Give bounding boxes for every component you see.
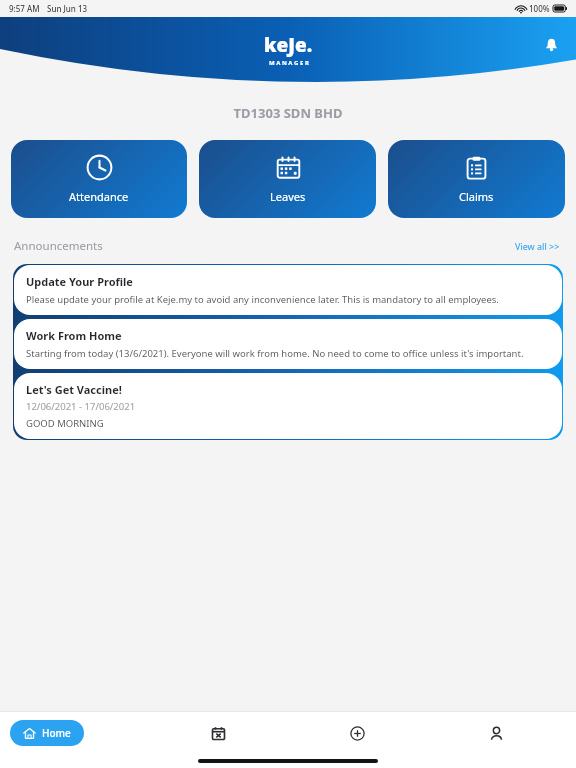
button[interactable]: Notifications xyxy=(538,31,564,57)
staticText: Sun Jun 13 xyxy=(47,3,88,14)
staticText: Attendance xyxy=(69,189,129,204)
staticText: keJe. xyxy=(264,32,313,58)
staticText: M A N A G E R xyxy=(269,59,309,67)
staticText: Claims xyxy=(459,189,494,204)
staticText: 9:57 AM xyxy=(9,3,40,14)
button[interactable]: Attendance xyxy=(11,140,187,218)
button[interactable]: Profile xyxy=(427,712,566,754)
staticText: 12/06/2021 - 17/06/2021 xyxy=(26,400,136,413)
staticText: Please update your profile at Keje.my to… xyxy=(26,293,499,306)
button[interactable]: Leaves xyxy=(199,140,376,218)
button[interactable]: Claims xyxy=(388,140,565,218)
staticText: 100% xyxy=(529,3,550,14)
button[interactable]: Home xyxy=(10,720,84,746)
staticText: Leaves xyxy=(270,189,306,204)
staticText: View all >> xyxy=(515,240,560,252)
staticText: Starting from today (13/6/2021). Everyon… xyxy=(26,347,524,360)
staticText: Work From Home xyxy=(26,328,122,343)
button[interactable]: Work From Home xyxy=(14,319,562,369)
staticText: Home xyxy=(42,726,71,740)
staticText: Let's Get Vaccine! xyxy=(26,382,122,397)
button[interactable]: Calendar xyxy=(149,712,288,754)
button[interactable]: Add xyxy=(288,712,427,754)
staticText: TD1303 SDN BHD xyxy=(0,104,576,122)
staticText: Announcements xyxy=(14,238,103,254)
button[interactable]: Let's Get Vaccine! xyxy=(14,373,562,439)
button[interactable]: View all >> xyxy=(513,238,562,254)
staticText: GOOD MORNING xyxy=(26,417,104,430)
button[interactable]: Update Your Profile xyxy=(14,265,562,315)
staticText: Update Your Profile xyxy=(26,274,133,289)
